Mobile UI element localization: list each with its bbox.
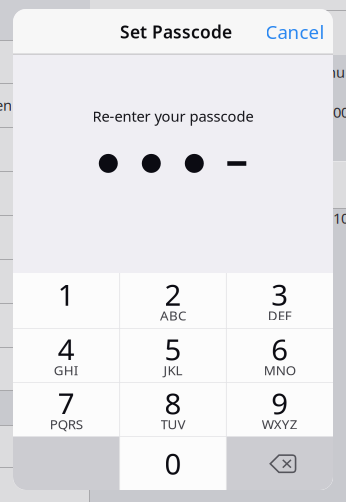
- button[interactable]: 4: [13, 328, 120, 382]
- staticText: MNO: [264, 361, 296, 379]
- button[interactable]: 5: [120, 328, 226, 382]
- button[interactable]: 0: [120, 436, 226, 490]
- staticText: 8: [164, 383, 181, 422]
- button[interactable]: Delete: [226, 436, 333, 490]
- button[interactable]: 2: [120, 273, 226, 328]
- staticText: 6: [271, 329, 288, 368]
- button[interactable]: 1: [13, 273, 120, 328]
- staticText: 2: [164, 275, 181, 314]
- staticText: 5: [164, 329, 181, 368]
- staticText: DEF: [268, 306, 292, 324]
- staticText: JKL: [163, 361, 182, 379]
- staticText: GHI: [54, 361, 79, 379]
- button[interactable]: Cancel: [243, 9, 333, 54]
- staticText: WXYZ: [262, 415, 298, 433]
- staticText: Re-enter your passcode: [92, 106, 253, 126]
- button[interactable]: 8: [120, 382, 226, 436]
- staticText: 7: [58, 383, 75, 422]
- staticText: PQRS: [50, 415, 83, 433]
- staticText: Cancel: [265, 19, 324, 44]
- staticText: 30:00: [313, 102, 346, 122]
- staticText: 9: [271, 383, 288, 422]
- button[interactable]: 6: [226, 328, 333, 382]
- staticText: TUV: [160, 415, 185, 433]
- staticText: ABC: [160, 306, 186, 324]
- button[interactable]: 7: [13, 382, 120, 436]
- button[interactable]: 3: [226, 273, 333, 328]
- staticText: 0: [164, 444, 181, 483]
- staticText: Screen: [0, 95, 12, 115]
- staticText: 3: [271, 275, 288, 314]
- staticText: 1: [58, 275, 75, 314]
- staticText: Set Passcode: [120, 20, 232, 43]
- button[interactable]: Blank: [13, 436, 120, 490]
- staticText: 10: [333, 208, 346, 228]
- staticText: Menu: [306, 62, 345, 82]
- button[interactable]: 9: [226, 382, 333, 436]
- staticText: 4: [58, 329, 75, 368]
